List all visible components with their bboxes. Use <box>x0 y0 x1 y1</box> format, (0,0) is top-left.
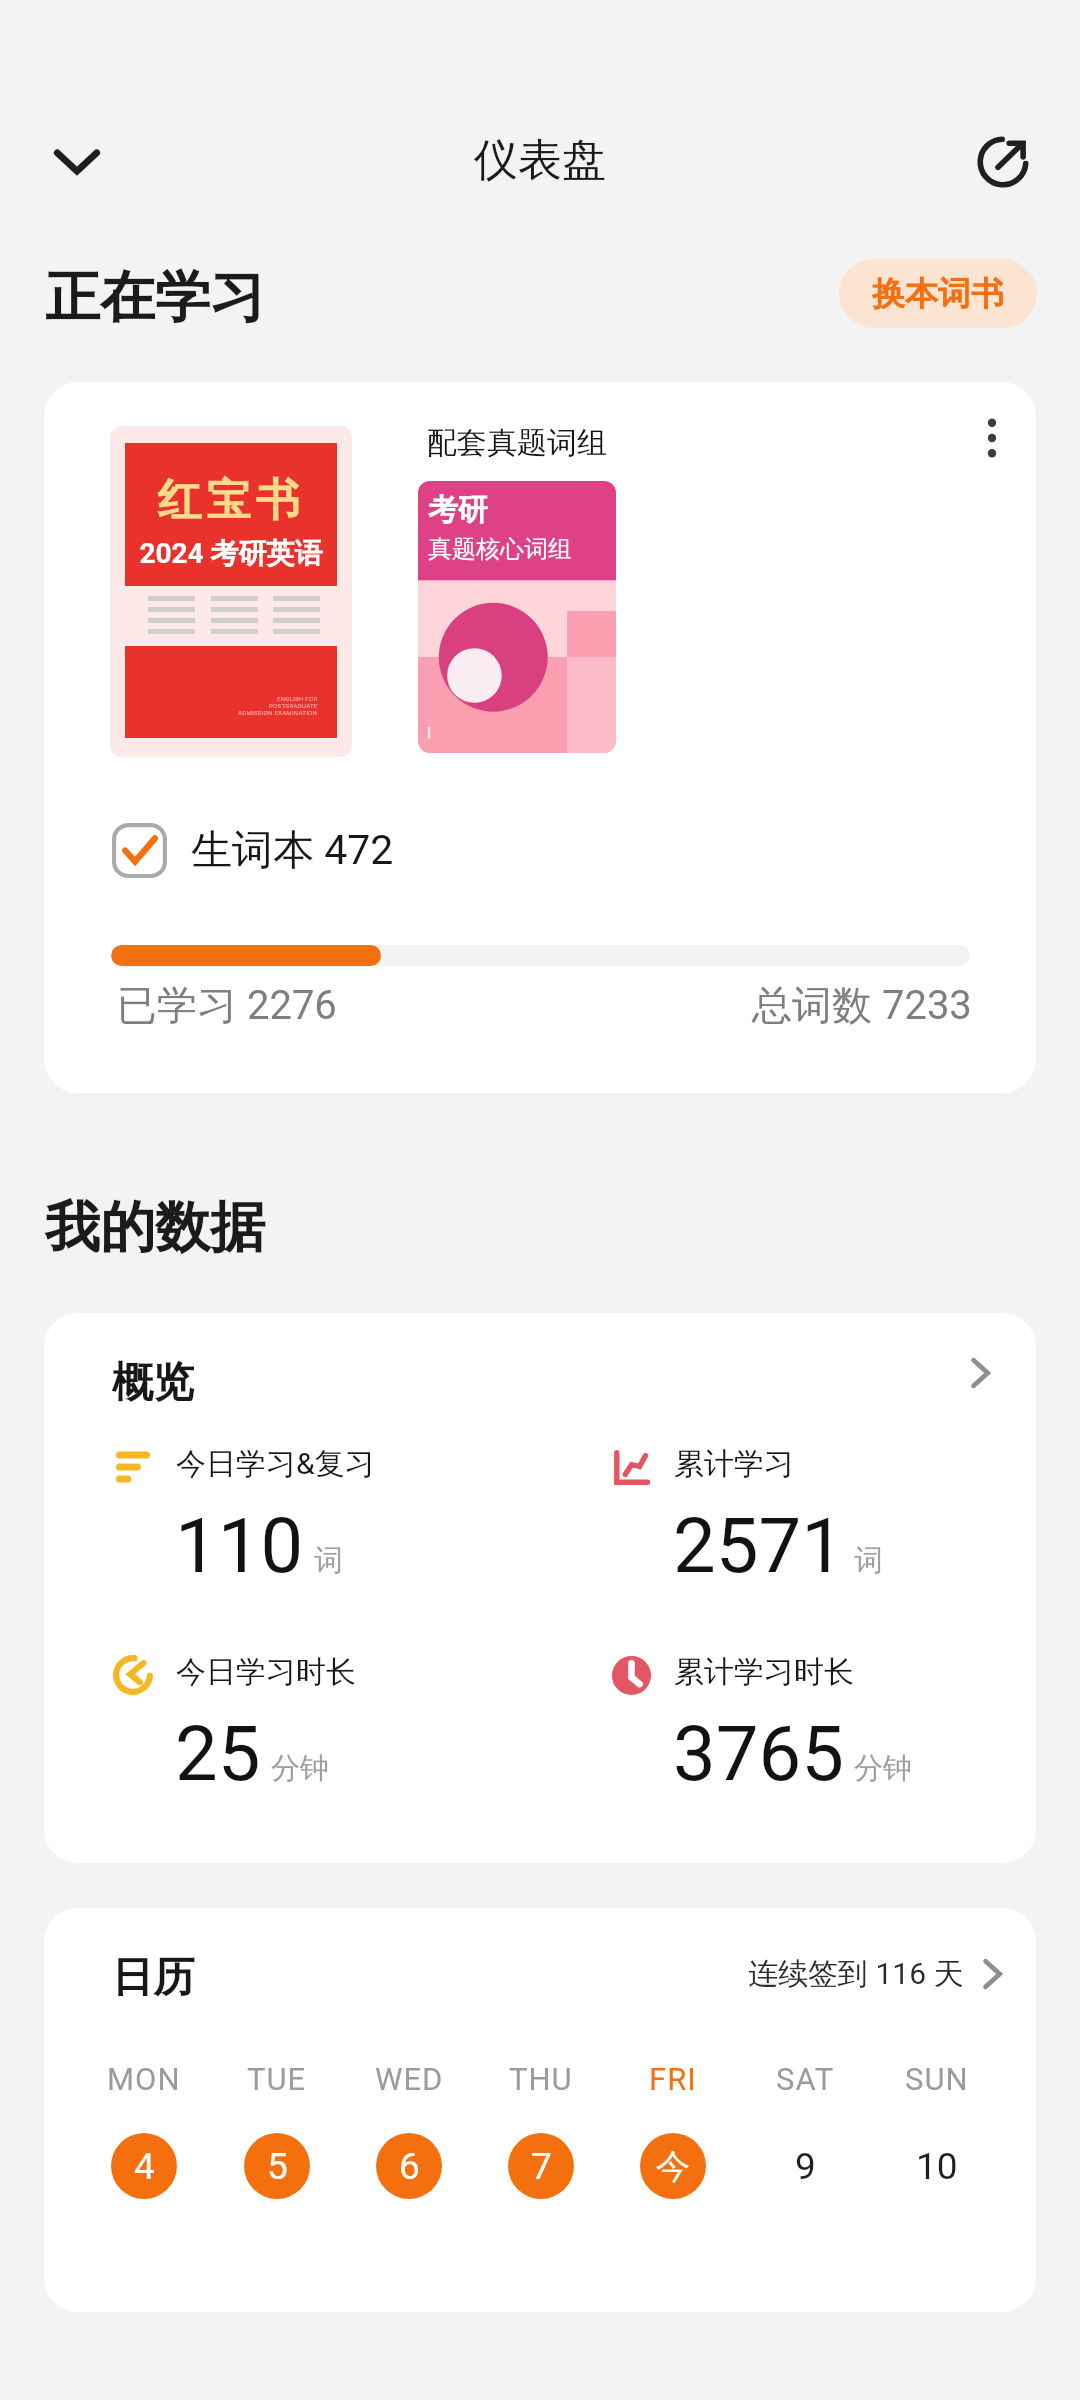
button[interactable]: Share <box>953 113 1049 209</box>
staticText: 今日学习时长 <box>176 1653 356 1691</box>
staticText: 生词本 472 <box>191 825 394 877</box>
button[interactable]: 4 <box>111 2133 177 2199</box>
button[interactable]: 换本词书 <box>839 259 1037 328</box>
staticText: SUN <box>905 2061 969 2097</box>
button[interactable]: 10 <box>904 2133 970 2199</box>
staticText: 今 <box>656 2145 690 2188</box>
staticText: 4 <box>134 2145 155 2188</box>
button[interactable]: 7 <box>508 2133 574 2199</box>
staticText: 换本词书 <box>872 273 1004 315</box>
staticText: 词 <box>854 1542 883 1579</box>
button[interactable]: More options <box>954 400 1030 476</box>
staticText: 2571 <box>673 1501 844 1590</box>
staticText: 今日学习&复习 <box>176 1445 375 1483</box>
staticText: POSTGRADUATE <box>269 702 318 709</box>
staticText: 5 <box>267 2145 288 2188</box>
staticText: MON <box>107 2061 181 2097</box>
staticText: 正在学习 <box>45 263 265 332</box>
button[interactable]: 日历 <box>44 1908 1036 2312</box>
staticText: 25 <box>175 1709 261 1798</box>
staticText: 累计学习 <box>674 1445 794 1483</box>
staticText: ENGLISH FOR <box>277 695 318 702</box>
button[interactable]: 9 <box>772 2133 838 2199</box>
button[interactable]: 6 <box>376 2133 442 2199</box>
button[interactable]: Open calendar <box>960 1942 1024 2006</box>
button[interactable]: 红宝书 <box>44 382 1036 1093</box>
staticText: 词 <box>314 1542 343 1579</box>
staticText: WED <box>375 2061 444 2097</box>
staticText: ADMISSION EXAMINATION <box>238 709 318 716</box>
staticText: TUE <box>247 2061 307 2097</box>
staticText: 2024 考研英语 <box>125 536 337 571</box>
staticText: 110 <box>175 1501 304 1590</box>
button[interactable]: 概览 <box>44 1313 1036 1863</box>
staticText: 配套真题词组 <box>427 424 607 462</box>
staticText: 3765 <box>673 1709 844 1798</box>
staticText: 总词数 7233 <box>752 980 972 1030</box>
staticText: 真题核心词组 <box>428 534 572 564</box>
staticText: 7 <box>531 2145 552 2188</box>
staticText: 红宝书 <box>125 473 337 528</box>
staticText: 仪表盘 <box>0 133 1080 188</box>
staticText: 日历 <box>112 1952 194 2004</box>
staticText: 累计学习时长 <box>674 1653 854 1691</box>
staticText: FRI <box>649 2061 697 2097</box>
staticText: 考研 <box>428 491 488 529</box>
button[interactable]: 5 <box>244 2133 310 2199</box>
button[interactable]: Collapse <box>29 114 125 210</box>
button[interactable]: Open overview <box>948 1341 1012 1405</box>
staticText: 6 <box>399 2145 420 2188</box>
staticText: THU <box>509 2061 573 2097</box>
staticText: 分钟 <box>271 1750 329 1787</box>
button[interactable] <box>112 823 167 878</box>
staticText: 我的数据 <box>45 1193 265 1262</box>
button[interactable]: 今 <box>640 2133 706 2199</box>
staticText: 分钟 <box>854 1750 912 1787</box>
staticText: 已学习 2276 <box>117 980 337 1030</box>
staticText: 10 <box>916 2145 958 2188</box>
staticText: SAT <box>776 2061 835 2097</box>
staticText: 概览 <box>112 1357 194 1409</box>
staticText: 9 <box>795 2145 816 2188</box>
staticText: 连续签到 116 天 <box>748 1955 964 1993</box>
